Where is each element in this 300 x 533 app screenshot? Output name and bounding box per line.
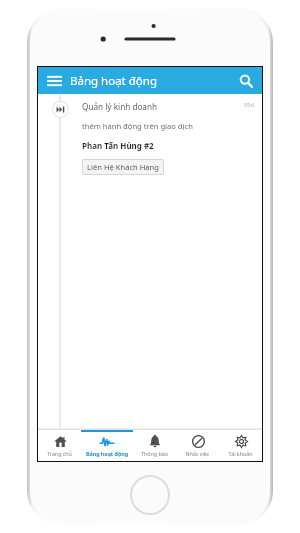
button[interactable]: Bảng hoạt động — [81, 430, 133, 461]
staticText: thêm hành động trên giao dịch — [82, 121, 193, 131]
staticText: Bảng hoạt động — [70, 73, 230, 89]
staticText: Liên Hệ Khách Hàng — [87, 162, 159, 172]
staticText: Phan Tấn Hùng #2 — [82, 140, 154, 151]
button[interactable]: Thông báo — [133, 430, 176, 461]
button[interactable]: Menu — [38, 67, 70, 94]
button[interactable]: Liên Hệ Khách Hàng — [82, 159, 164, 175]
staticText: Tài khoản — [219, 450, 262, 457]
button[interactable]: Nhắc việc — [176, 430, 219, 461]
button[interactable]: Quản lý kinh doanh — [38, 94, 262, 429]
staticText: Thông báo — [133, 450, 176, 457]
staticText: Trang chủ — [38, 450, 81, 457]
staticText: Nhắc việc — [176, 450, 219, 457]
button[interactable]: Search — [230, 67, 262, 94]
button[interactable]: Tài khoản — [219, 430, 262, 461]
staticText: Quản lý kinh doanh — [82, 101, 244, 112]
staticText: Bảng hoạt động — [81, 450, 133, 457]
button[interactable]: Trang chủ — [38, 430, 81, 461]
staticText: 55d — [244, 101, 254, 109]
